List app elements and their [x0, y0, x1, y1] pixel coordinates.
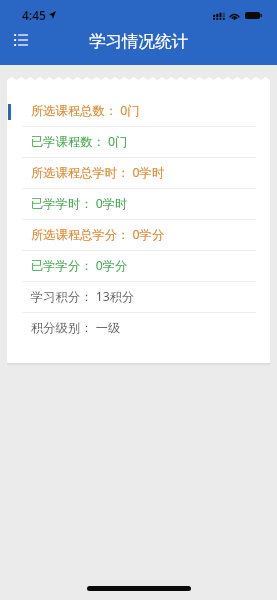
- button[interactable]: 所选课程总数： 0门: [7, 96, 270, 127]
- button[interactable]: 积分级别： 一级: [7, 313, 270, 344]
- staticText: 所选课程总数： 0门: [31, 102, 140, 119]
- staticText: 已学课程数： 0门: [31, 133, 128, 150]
- staticText: 积分级别： 一级: [31, 319, 121, 336]
- button[interactable]: 已学课程数： 0门: [7, 127, 270, 158]
- button[interactable]: 学习积分： 13积分: [7, 282, 270, 313]
- button[interactable]: 已学学分： 0学分: [7, 251, 270, 282]
- staticText: 已学学分： 0学分: [31, 257, 128, 274]
- staticText: 4:45: [22, 7, 46, 23]
- button[interactable]: 所选课程总学分： 0学分: [7, 220, 270, 251]
- button[interactable]: 所选课程总学时： 0学时: [7, 158, 270, 189]
- button[interactable]: Menu: [6, 27, 36, 53]
- staticText: 所选课程总学时： 0学时: [31, 164, 165, 181]
- staticText: 学习情况统计: [89, 31, 188, 52]
- staticText: 学习积分： 13积分: [31, 288, 135, 305]
- button[interactable]: 已学学时： 0学时: [7, 189, 270, 220]
- staticText: 已学学时： 0学时: [31, 195, 128, 212]
- staticText: 所选课程总学分： 0学分: [31, 226, 165, 243]
